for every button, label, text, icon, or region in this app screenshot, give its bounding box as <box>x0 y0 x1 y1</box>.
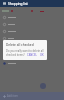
button[interactable]: Add <box>40 83 46 89</box>
button[interactable] <box>0 35 64 42</box>
staticText: Do you really want to delete all checked… <box>6 49 44 56</box>
button[interactable] <box>0 28 64 35</box>
button[interactable]: OK <box>39 52 45 58</box>
staticText: Shopping list <box>8 2 28 6</box>
button[interactable] <box>0 53 64 60</box>
button[interactable] <box>0 14 64 21</box>
staticText: OK <box>40 53 44 57</box>
button[interactable] <box>0 46 64 53</box>
button[interactable] <box>0 21 64 28</box>
staticText: CANCEL <box>27 53 37 57</box>
button[interactable]: Add item <box>2 93 20 99</box>
button[interactable]: Open navigation drawer <box>2 1 7 6</box>
staticText: Delete all checked <box>6 43 34 47</box>
button[interactable]: CANCEL <box>26 52 38 58</box>
staticText: Add item <box>7 94 19 98</box>
button[interactable] <box>0 60 64 67</box>
